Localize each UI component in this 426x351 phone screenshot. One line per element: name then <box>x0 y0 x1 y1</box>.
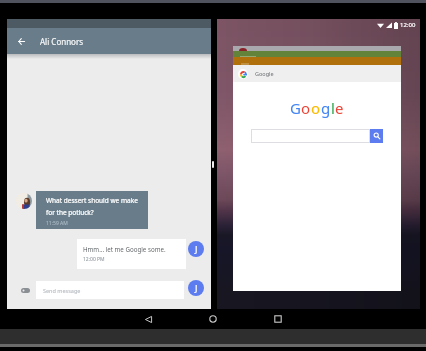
button[interactable]: Send message <box>36 281 184 299</box>
staticText: o <box>301 98 311 118</box>
button[interactable]: Recent apps <box>268 309 288 329</box>
staticText: J <box>195 243 198 255</box>
staticText: What dessert should we make <box>46 196 138 205</box>
staticText: g <box>321 98 331 118</box>
staticText: Hmm… let me Google some. <box>83 245 166 253</box>
staticText: 11:59 AM <box>46 220 68 227</box>
staticText: e <box>335 98 344 118</box>
staticText: Ali Connors <box>40 36 84 47</box>
button[interactable]: Back <box>138 309 158 329</box>
button[interactable]: Attach file <box>18 283 32 297</box>
staticText: 12:00 <box>400 21 416 29</box>
staticText: for the potluck? <box>46 208 94 217</box>
staticText: l <box>331 98 335 118</box>
staticText: o <box>311 98 321 118</box>
button[interactable]: Search <box>370 129 383 143</box>
staticText: J <box>195 282 198 294</box>
button[interactable]: Back <box>10 30 32 52</box>
staticText: G <box>290 98 301 118</box>
staticText: Send message <box>43 287 81 294</box>
staticText: 12:00 PM <box>83 256 105 263</box>
button[interactable]: J <box>188 280 204 296</box>
staticText: Google <box>255 70 274 77</box>
button[interactable] <box>251 129 370 143</box>
button[interactable]: Home <box>203 309 223 329</box>
